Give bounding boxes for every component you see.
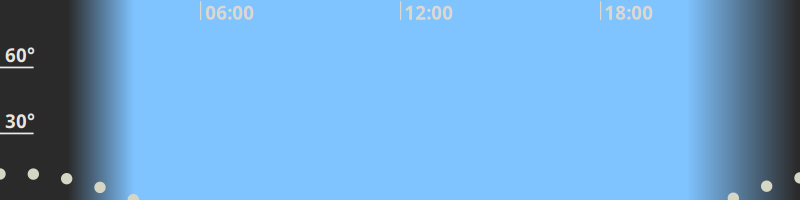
staticText: 06:00	[205, 0, 254, 25]
staticText: 18:00	[604, 0, 653, 25]
staticText: 60°	[5, 42, 35, 67]
staticText: 12:00	[404, 0, 453, 25]
staticText: 30°	[5, 108, 35, 133]
